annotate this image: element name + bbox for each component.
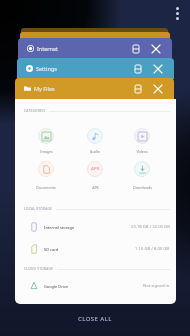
staticText: 1.16 GB / 8.00 GB bbox=[135, 246, 170, 252]
button[interactable]: Documents bbox=[24, 161, 68, 189]
staticText: My Files bbox=[34, 85, 55, 92]
button[interactable]: APK bbox=[73, 161, 117, 189]
button[interactable]: SD card bbox=[15, 240, 176, 258]
button[interactable]: Split screen bbox=[131, 78, 145, 99]
button[interactable]: Split screen bbox=[129, 38, 143, 59]
button[interactable]: More options bbox=[170, 4, 184, 22]
staticText: 23.18 GB / 32.00 GB bbox=[131, 224, 170, 230]
staticText: Audio bbox=[90, 149, 100, 154]
staticText: CATEGORIES bbox=[24, 109, 46, 113]
button[interactable]: Downloads bbox=[120, 161, 164, 189]
button[interactable]: Videos bbox=[120, 128, 164, 156]
staticText: Settings bbox=[36, 65, 57, 72]
button[interactable]: Close bbox=[149, 38, 163, 59]
staticText: APK bbox=[92, 185, 99, 189]
staticText: CLOSE ALL bbox=[78, 315, 112, 323]
button[interactable]: Settings bbox=[17, 58, 174, 79]
staticText: LOCAL STORAGE bbox=[24, 207, 53, 211]
button[interactable]: CLOSE ALL bbox=[63, 312, 127, 326]
staticText: APK bbox=[91, 166, 100, 172]
button[interactable]: Internet bbox=[18, 38, 172, 59]
staticText: Videos bbox=[136, 149, 148, 154]
button[interactable]: Google Drive bbox=[15, 277, 176, 295]
staticText: SD card bbox=[44, 247, 59, 252]
staticText: Internet bbox=[37, 45, 59, 52]
button[interactable]: Audio bbox=[73, 128, 117, 156]
button[interactable]: Internal storage bbox=[15, 218, 176, 236]
staticText: Images bbox=[40, 149, 53, 154]
button[interactable]: Close bbox=[151, 78, 165, 99]
button[interactable]: Close bbox=[151, 58, 165, 79]
button[interactable]: Split screen bbox=[131, 58, 145, 79]
button[interactable]: Images bbox=[24, 128, 68, 156]
button[interactable]: My Files bbox=[15, 78, 174, 99]
staticText: Google Drive bbox=[44, 284, 69, 289]
staticText: Downloads bbox=[133, 185, 152, 189]
staticText: Documents bbox=[36, 185, 56, 189]
staticText: Internal storage bbox=[44, 225, 75, 230]
staticText: Not signed in bbox=[143, 283, 170, 289]
staticText: CLOUD STORAGE bbox=[24, 267, 54, 271]
